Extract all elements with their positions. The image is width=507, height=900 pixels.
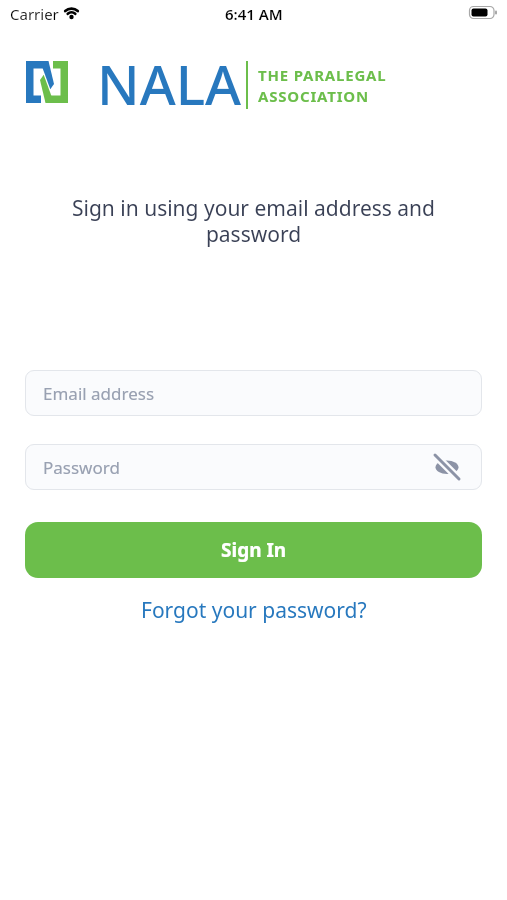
staticText: THE PARALEGAL bbox=[258, 65, 387, 85]
staticText: 6:41 AM bbox=[225, 4, 283, 24]
staticText: Sign In bbox=[221, 537, 287, 563]
staticText: ASSOCIATION bbox=[258, 86, 369, 106]
button[interactable]: Password bbox=[25, 444, 482, 490]
staticText: NALA bbox=[97, 46, 242, 121]
button[interactable]: Email address bbox=[25, 370, 482, 416]
button[interactable]: Forgot your password? bbox=[141, 596, 367, 625]
staticText: Sign in using your email address and pas… bbox=[0, 194, 507, 248]
staticText: Email address bbox=[43, 382, 155, 405]
staticText: Carrier bbox=[10, 4, 59, 24]
button[interactable]: Sign In bbox=[25, 522, 482, 578]
staticText: Password bbox=[43, 456, 120, 479]
